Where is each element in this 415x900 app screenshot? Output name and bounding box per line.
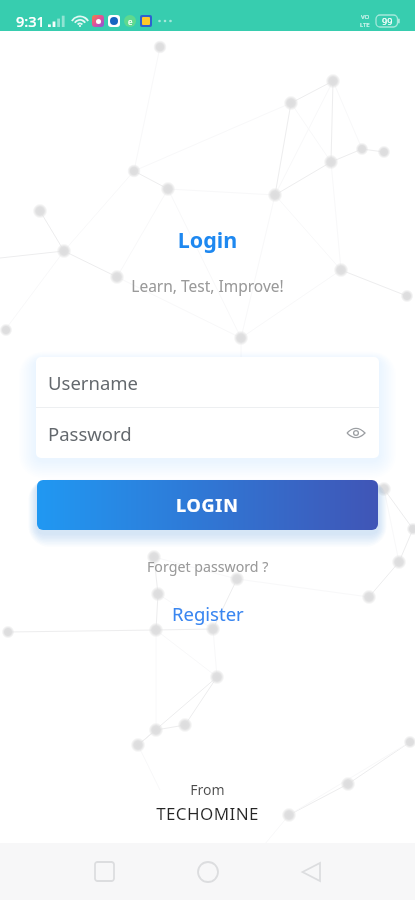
button[interactable]: Password xyxy=(36,408,379,458)
button[interactable]: Username xyxy=(36,357,379,407)
staticText: LTE xyxy=(360,21,370,29)
button[interactable]: LOGIN xyxy=(37,480,378,530)
staticText: Forget password ? xyxy=(147,557,269,576)
staticText: Password xyxy=(48,421,132,446)
staticText: From xyxy=(0,780,415,799)
staticText: VO xyxy=(361,13,370,21)
staticText: LOGIN xyxy=(176,493,239,518)
button[interactable]: Show password xyxy=(338,415,374,451)
staticText: e xyxy=(128,16,133,27)
button[interactable]: Recents xyxy=(80,843,128,900)
staticText: Username xyxy=(48,370,139,395)
staticText: 99 xyxy=(382,15,393,27)
staticText: TECHOMINE xyxy=(0,802,415,825)
staticText: Register xyxy=(172,601,244,626)
staticText: 9:31 xyxy=(16,11,45,31)
button[interactable]: Forget password ? xyxy=(0,554,415,578)
button[interactable]: Home xyxy=(184,843,232,900)
button[interactable]: Back xyxy=(287,843,335,900)
staticText: Login xyxy=(0,225,415,254)
staticText: Learn, Test, Improve! xyxy=(0,275,415,296)
button[interactable]: Register xyxy=(0,598,415,628)
